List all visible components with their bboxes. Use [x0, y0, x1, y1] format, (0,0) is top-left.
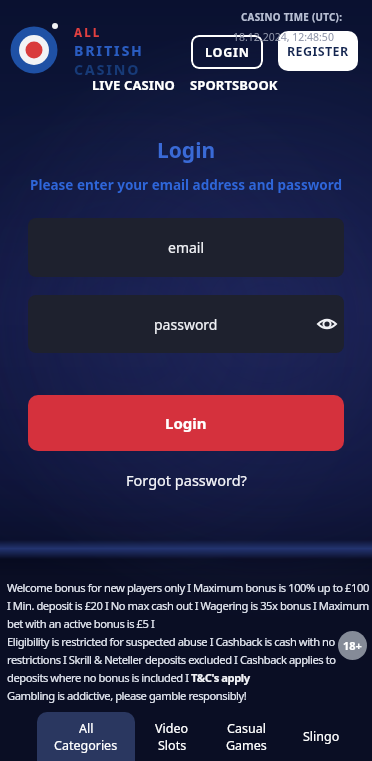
staticText: All — [79, 720, 94, 737]
staticText: I Min. deposit is £20 I No max cash out … — [7, 598, 369, 616]
button[interactable]: REGISTER — [278, 31, 358, 71]
button[interactable]: password — [28, 295, 344, 353]
staticText: Games — [226, 737, 267, 754]
staticText: restrictions I Skrill & Neteller deposit… — [7, 652, 336, 670]
staticText: Please enter your email address and pass… — [30, 176, 342, 194]
staticText: Eligibility is restricted for suspected … — [7, 634, 335, 652]
staticText: Welcome bonus for new players only I Max… — [7, 580, 369, 598]
button[interactable]: Video — [137, 712, 207, 761]
staticText: 18.12.2024, 12:48:50 — [233, 30, 334, 44]
button[interactable]: SPORTSBOOK — [190, 76, 278, 94]
button[interactable]: Login — [28, 395, 344, 451]
staticText: CASINO — [74, 60, 141, 79]
button[interactable]: Slingo — [290, 712, 352, 761]
staticText: Slingo — [303, 728, 340, 745]
staticText: Slots — [158, 737, 187, 754]
button[interactable]: All — [37, 712, 135, 761]
staticText: LOGIN — [205, 44, 250, 61]
staticText: password — [154, 315, 218, 334]
button[interactable]: email — [28, 218, 344, 277]
staticText: deposits where no bonus is included I T&… — [7, 670, 250, 688]
button[interactable]: LIVE CASINO — [92, 76, 175, 94]
staticText: CASINO TIME (UTC): — [241, 11, 343, 24]
staticText: Video — [155, 720, 189, 737]
button[interactable]: LOGIN — [191, 35, 263, 69]
staticText: Casual — [227, 720, 266, 737]
staticText: bet with an active bonus is £5 I — [7, 616, 155, 634]
staticText: Categories — [54, 737, 118, 754]
staticText: Login — [157, 136, 216, 165]
staticText: BRITISH — [74, 41, 144, 60]
staticText: email — [168, 238, 205, 257]
staticText: 18+ — [343, 638, 362, 653]
button[interactable]: Casual — [210, 712, 282, 761]
staticText: REGISTER — [287, 43, 349, 60]
staticText: ALL — [74, 25, 102, 41]
staticText: Login — [165, 413, 207, 433]
button[interactable]: Forgot password? — [126, 470, 247, 490]
staticText: Gambling is addictive, please gamble res… — [7, 688, 247, 706]
